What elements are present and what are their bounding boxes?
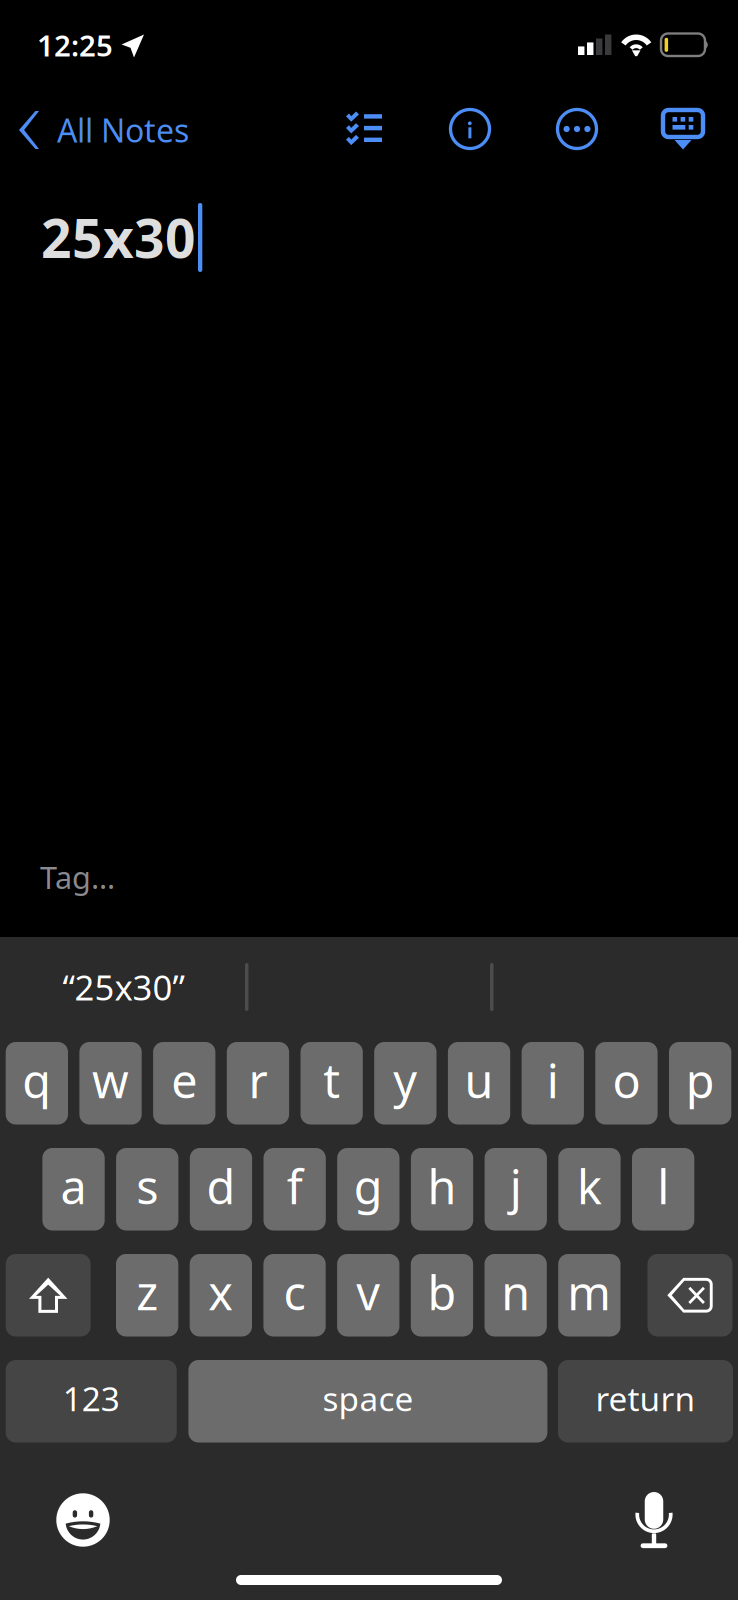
- button[interactable]: More: [541, 93, 613, 165]
- staticText: a: [60, 1155, 86, 1217]
- button[interactable]: Emoji: [35, 1478, 131, 1562]
- button[interactable]: c: [263, 1254, 326, 1336]
- button[interactable]: o: [595, 1042, 658, 1124]
- button[interactable]: 25x30: [0, 205, 738, 825]
- button[interactable]: a: [42, 1148, 105, 1230]
- button[interactable]: All Notes: [0, 94, 200, 166]
- staticText: 12:25: [37, 25, 113, 64]
- staticText: All Notes: [57, 109, 189, 151]
- staticText: m: [567, 1261, 611, 1323]
- button[interactable]: v: [337, 1254, 399, 1336]
- button[interactable]: w: [79, 1042, 142, 1124]
- button[interactable]: Tag...: [0, 846, 738, 908]
- staticText: “25x30”: [62, 964, 184, 1010]
- button[interactable]: Dictate: [606, 1478, 702, 1562]
- button[interactable]: “25x30”: [0, 940, 247, 1034]
- staticText: e: [171, 1049, 197, 1111]
- button[interactable]: Delete: [647, 1254, 732, 1336]
- staticText: l: [657, 1155, 669, 1217]
- button[interactable]: Checklist: [328, 92, 400, 164]
- staticText: g: [354, 1155, 383, 1217]
- staticText: d: [206, 1155, 235, 1217]
- button[interactable]: l: [632, 1148, 694, 1230]
- button[interactable]: s: [116, 1148, 178, 1230]
- staticText: i: [547, 1049, 559, 1111]
- staticText: space: [322, 1376, 413, 1420]
- button[interactable]: Info: [434, 93, 506, 165]
- button[interactable]: z: [116, 1254, 178, 1336]
- staticText: c: [283, 1261, 305, 1323]
- button[interactable]: y: [374, 1042, 436, 1124]
- button[interactable]: q: [6, 1042, 68, 1124]
- button[interactable]: 123: [6, 1360, 177, 1442]
- button[interactable]: h: [411, 1148, 473, 1230]
- button[interactable]: return: [558, 1360, 733, 1442]
- staticText: z: [136, 1261, 158, 1323]
- staticText: k: [577, 1155, 602, 1217]
- staticText: x: [208, 1261, 233, 1323]
- staticText: w: [92, 1049, 129, 1111]
- button[interactable]: r: [227, 1042, 289, 1124]
- staticText: Tag...: [40, 857, 115, 897]
- staticText: u: [465, 1049, 494, 1111]
- button[interactable]: g: [337, 1148, 399, 1230]
- staticText: y: [393, 1049, 417, 1111]
- button[interactable]: e: [153, 1042, 215, 1124]
- staticText: b: [427, 1261, 456, 1323]
- button[interactable]: n: [484, 1254, 547, 1336]
- staticText: return: [595, 1376, 695, 1420]
- button[interactable]: space: [188, 1360, 547, 1442]
- staticText: f: [287, 1155, 303, 1217]
- staticText: 123: [63, 1376, 120, 1420]
- staticText: h: [427, 1155, 456, 1217]
- button[interactable]: x: [190, 1254, 252, 1336]
- staticText: n: [501, 1261, 530, 1323]
- button[interactable]: f: [263, 1148, 326, 1230]
- button[interactable]: u: [448, 1042, 510, 1124]
- staticText: s: [136, 1155, 158, 1217]
- button[interactable]: b: [411, 1254, 473, 1336]
- staticText: j: [510, 1155, 522, 1217]
- button[interactable]: m: [558, 1254, 620, 1336]
- button[interactable]: Shift: [6, 1254, 91, 1336]
- staticText: 25x30: [41, 202, 196, 273]
- staticText: p: [686, 1049, 715, 1111]
- button[interactable]: p: [669, 1042, 731, 1124]
- button[interactable]: i: [522, 1042, 584, 1124]
- button[interactable]: t: [300, 1042, 363, 1124]
- button[interactable]: k: [558, 1148, 621, 1230]
- button[interactable]: d: [190, 1148, 252, 1230]
- staticText: o: [612, 1049, 640, 1111]
- staticText: r: [248, 1049, 267, 1111]
- button[interactable]: j: [485, 1148, 547, 1230]
- staticText: t: [323, 1049, 340, 1111]
- button[interactable]: Hide Keyboard: [647, 94, 719, 166]
- staticText: v: [356, 1261, 380, 1323]
- staticText: q: [22, 1049, 51, 1111]
